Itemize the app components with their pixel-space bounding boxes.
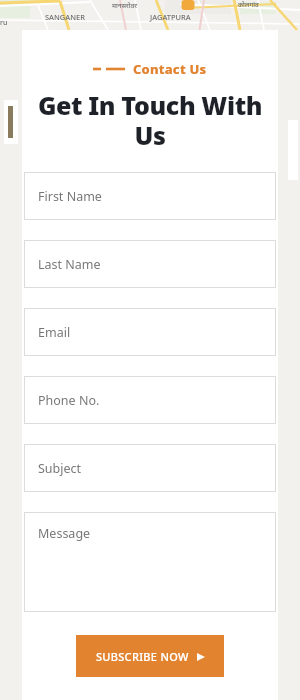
staticText: SUBSCRIBE NOW xyxy=(96,649,189,664)
staticText: Contact Us xyxy=(133,60,207,78)
button[interactable]: Subject xyxy=(24,444,276,492)
button[interactable]: First Name xyxy=(24,172,276,220)
button[interactable]: Last Name xyxy=(24,240,276,288)
button[interactable]: Email xyxy=(24,308,276,356)
staticText: कोलगांव xyxy=(238,0,259,9)
staticText: ru xyxy=(0,18,8,28)
staticText: Subject xyxy=(38,460,82,477)
button[interactable]: Phone No. xyxy=(24,376,276,424)
staticText: JAGATPURA xyxy=(150,12,191,22)
staticText: Phone No. xyxy=(38,392,100,409)
button[interactable]: Message xyxy=(24,512,276,612)
staticText: Last Name xyxy=(38,256,101,273)
staticText: First Name xyxy=(38,188,102,205)
button[interactable]: SUBSCRIBE NOW xyxy=(76,635,224,677)
staticText: Get In Touch With Us xyxy=(26,88,274,152)
staticText: Message xyxy=(38,525,91,542)
staticText: मानसरोवर xyxy=(112,1,137,10)
staticText: Email xyxy=(38,324,71,341)
staticText: SANGANER xyxy=(45,12,85,22)
